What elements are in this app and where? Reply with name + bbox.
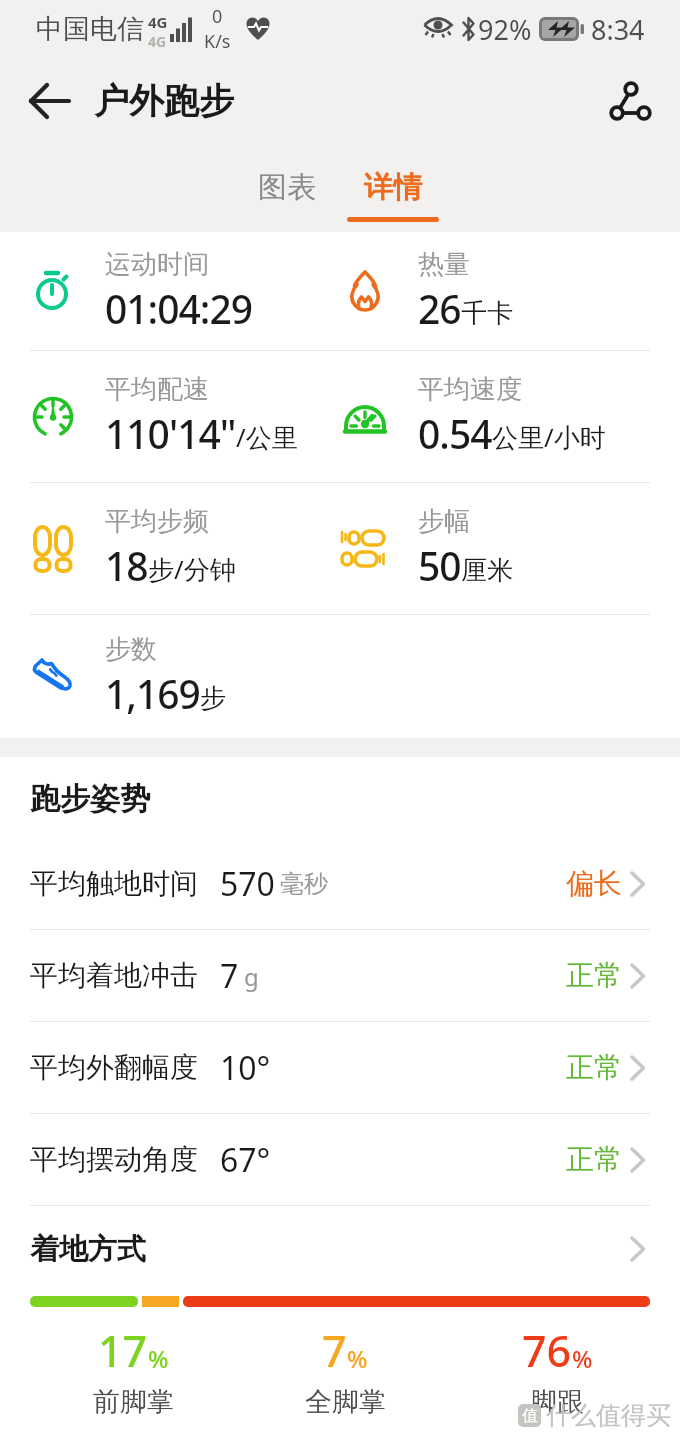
staticText: % <box>572 1342 593 1375</box>
staticText: 平均外翻幅度 <box>30 1050 198 1085</box>
staticText: 1,169 <box>105 667 200 720</box>
staticText: 跑步姿势 <box>30 780 150 818</box>
staticText: 平均步频 <box>105 505 209 538</box>
staticText: 7 <box>220 954 239 998</box>
staticText: 01:04:29 <box>105 282 253 335</box>
staticText: g <box>244 960 259 993</box>
staticText: 50 <box>418 539 461 592</box>
staticText: K/s <box>204 29 231 54</box>
staticText: 92% <box>478 11 532 48</box>
staticText: 正常 <box>566 1050 622 1085</box>
button[interactable] <box>610 82 651 120</box>
staticText: 570 <box>220 862 275 906</box>
staticText: /公里 <box>236 419 298 455</box>
button[interactable]: 步数 <box>0 615 680 738</box>
staticText: 中国电信 <box>36 12 144 46</box>
staticText: 4G <box>148 32 167 51</box>
staticText: 0.54 <box>418 407 492 460</box>
staticText: 毫秒 <box>280 869 328 899</box>
button[interactable]: 平均摆动角度 <box>0 1114 680 1205</box>
staticText: 18 <box>105 539 148 592</box>
button[interactable]: 热量 <box>340 232 680 350</box>
staticText: 什么值得买 <box>546 1400 671 1431</box>
staticText: 户外跑步 <box>94 79 234 123</box>
button[interactable]: 平均步频 <box>0 483 340 614</box>
staticText: 运动时间 <box>105 248 209 281</box>
button[interactable]: 图表 <box>234 143 340 232</box>
button[interactable]: 详情 <box>340 143 446 232</box>
button[interactable]: 平均外翻幅度 <box>0 1022 680 1113</box>
staticText: 脚跟 <box>530 1385 584 1419</box>
button[interactable]: 平均触地时间 <box>0 838 680 929</box>
staticText: 平均触地时间 <box>30 866 198 901</box>
staticText: 全脚掌 <box>305 1385 386 1419</box>
staticText: 详情 <box>364 169 422 206</box>
staticText: 前脚掌 <box>93 1385 174 1419</box>
staticText: 67° <box>220 1138 271 1182</box>
button[interactable]: 平均配速 <box>0 351 340 482</box>
staticText: 76 <box>522 1321 572 1380</box>
staticText: % <box>347 1342 368 1375</box>
staticText: 110'14" <box>105 407 236 460</box>
staticText: 厘米 <box>461 554 513 587</box>
button[interactable]: 着地方式 <box>0 1206 680 1292</box>
staticText: 千卡 <box>461 297 513 330</box>
staticText: 10° <box>220 1046 271 1090</box>
staticText: 热量 <box>418 248 470 281</box>
staticText: 0 <box>212 4 223 29</box>
staticText: % <box>148 1342 169 1375</box>
button[interactable]: 平均着地冲击 <box>0 930 680 1021</box>
staticText: 17 <box>98 1321 148 1380</box>
staticText: 平均摆动角度 <box>30 1142 198 1177</box>
staticText: 4G <box>148 12 168 32</box>
staticText: 正常 <box>566 1142 622 1177</box>
staticText: 着地方式 <box>30 1231 146 1268</box>
staticText: 8:34 <box>591 11 645 48</box>
staticText: 平均速度 <box>418 373 522 406</box>
staticText: 7 <box>322 1321 347 1380</box>
staticText: 步幅 <box>418 505 470 538</box>
button[interactable]: 步幅 <box>340 483 680 614</box>
button[interactable]: 平均速度 <box>340 351 680 482</box>
button[interactable] <box>28 83 70 119</box>
staticText: 步数 <box>105 633 157 666</box>
staticText: 平均配速 <box>105 373 209 406</box>
staticText: 步 <box>200 682 226 715</box>
staticText: 偏长 <box>566 866 622 901</box>
staticText: 公里/小时 <box>492 419 606 455</box>
staticText: 值 <box>522 1406 538 1426</box>
staticText: 步/分钟 <box>148 551 236 587</box>
staticText: 26 <box>418 282 461 335</box>
staticText: 图表 <box>258 169 316 206</box>
staticText: 正常 <box>566 958 622 993</box>
button[interactable]: 运动时间 <box>0 232 340 350</box>
staticText: 平均着地冲击 <box>30 958 198 993</box>
